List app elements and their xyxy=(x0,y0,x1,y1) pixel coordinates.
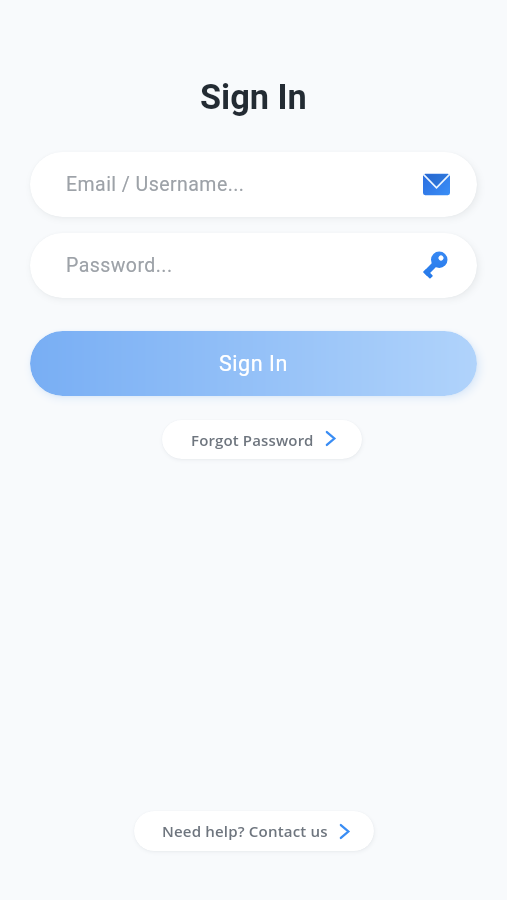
staticText: Sign In xyxy=(200,77,307,117)
other: Email xyxy=(423,171,450,198)
other: Password xyxy=(420,249,450,279)
staticText: Sign In xyxy=(219,351,288,376)
button[interactable]: Email / Username... xyxy=(30,152,477,217)
button[interactable]: Forgot Password xyxy=(162,420,362,459)
staticText: Email / Username... xyxy=(66,173,424,196)
button[interactable]: Need help? Contact us xyxy=(134,811,374,851)
staticText: Forgot Password xyxy=(191,430,314,450)
staticText: Password... xyxy=(66,254,421,277)
button[interactable]: Password... xyxy=(30,233,477,298)
staticText: Need help? Contact us xyxy=(162,821,328,842)
button[interactable]: Sign In xyxy=(30,331,477,396)
